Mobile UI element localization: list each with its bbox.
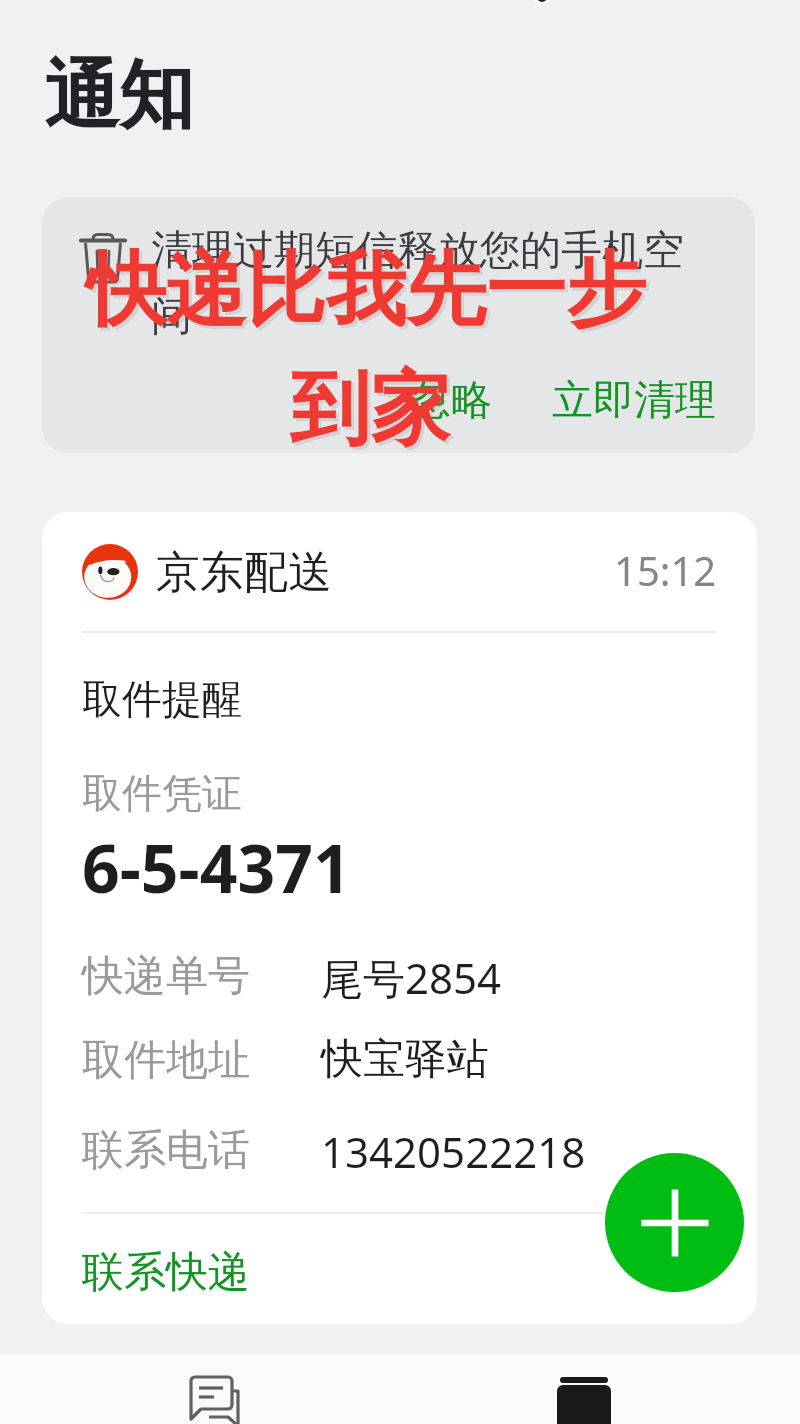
button[interactable]: 清理过期短信释放您的手机空间 bbox=[42, 197, 755, 453]
staticText: 京东配送 bbox=[156, 545, 332, 600]
button[interactable]: 联系快递 bbox=[42, 1230, 757, 1319]
staticText: 通知 bbox=[44, 49, 194, 143]
staticText: 快递比我先一步 bbox=[86, 240, 646, 341]
staticText: 取件提醒 bbox=[82, 674, 242, 724]
button[interactable]: 立即清理 bbox=[536, 363, 732, 439]
staticText: 快宝驿站 bbox=[321, 1033, 489, 1086]
button[interactable]: Messages bbox=[181, 1364, 251, 1424]
staticText: 到家 bbox=[293, 362, 453, 463]
staticText: 尾号2854 bbox=[321, 949, 502, 1006]
button[interactable]: 忽略 bbox=[394, 363, 508, 439]
button[interactable]: Contacts bbox=[545, 1364, 625, 1424]
staticText: 快递比我先一步 bbox=[89, 243, 649, 344]
staticText: 取件凭证 bbox=[82, 768, 242, 818]
staticText: 忽略 bbox=[410, 375, 492, 427]
staticText: 15:12 bbox=[614, 543, 717, 597]
staticText: 6-5-4371 bbox=[82, 822, 351, 912]
staticText: 取件地址 bbox=[82, 1034, 250, 1087]
staticText: 快递单号 bbox=[82, 950, 250, 1003]
staticText: 清理过期短信释放您的手机空间 bbox=[151, 225, 696, 342]
button[interactable]: New message bbox=[605, 1153, 744, 1292]
staticText: 联系快递 bbox=[82, 1246, 250, 1299]
button[interactable]: 京东配送 bbox=[42, 512, 757, 1324]
staticText: 联系电话 bbox=[82, 1124, 250, 1177]
staticText: 到家 bbox=[290, 359, 450, 460]
staticText: 立即清理 bbox=[552, 375, 716, 427]
staticText: 13420522218 bbox=[321, 1123, 586, 1180]
